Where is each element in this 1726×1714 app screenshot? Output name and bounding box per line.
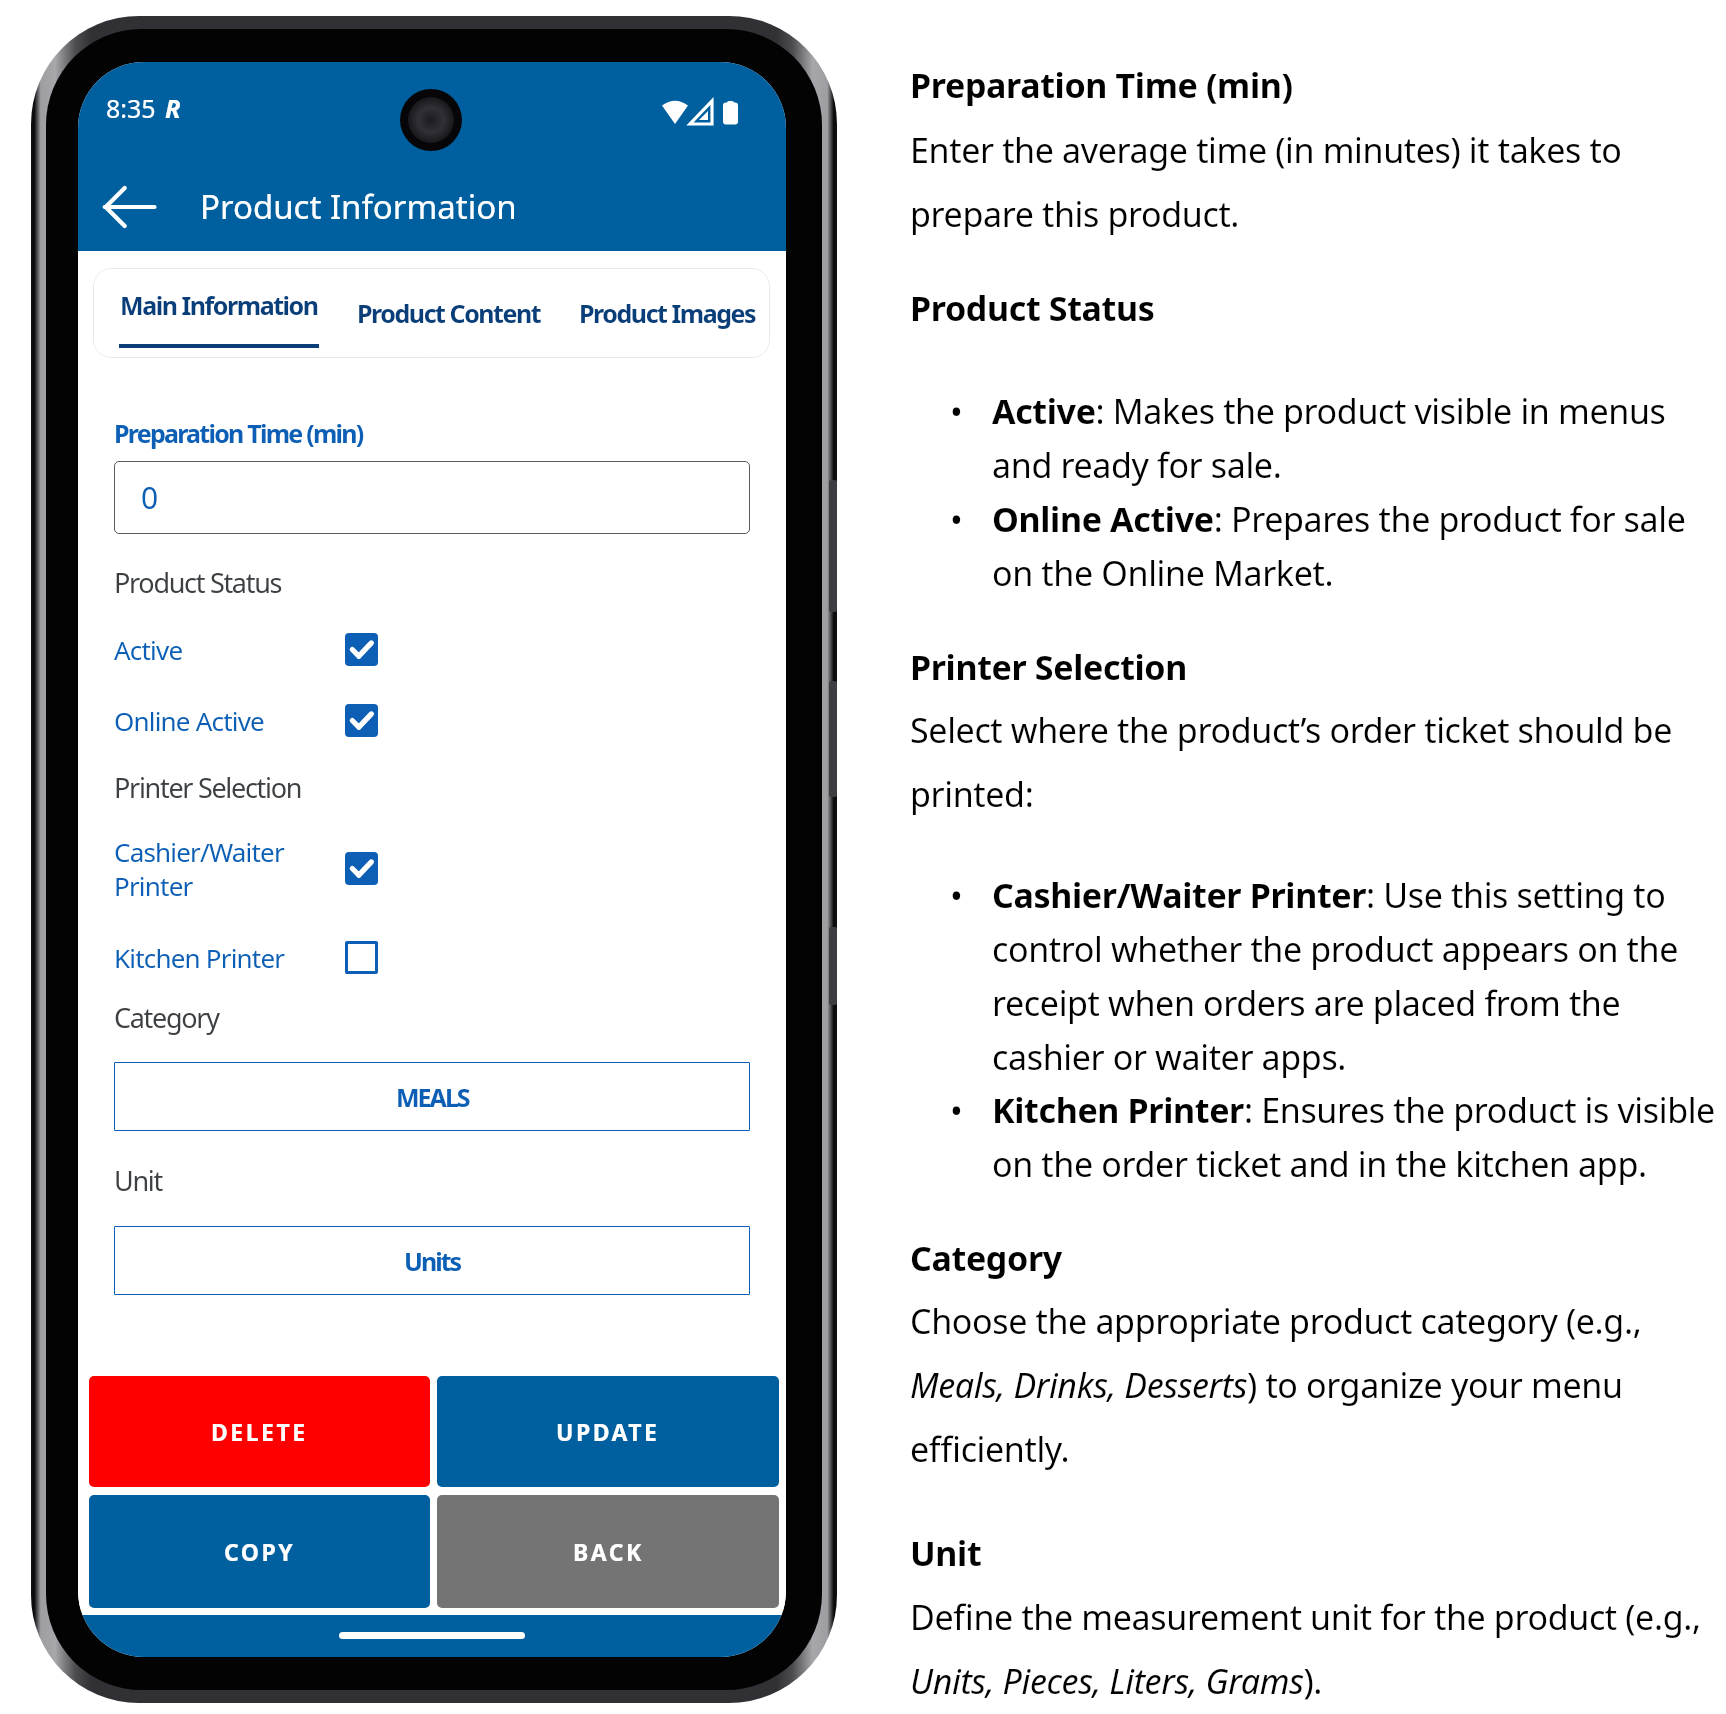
staticText: Category <box>910 1235 1716 1281</box>
staticText: • <box>950 1087 963 1133</box>
staticText: Online Active: Prepares the product for … <box>992 496 1716 596</box>
button[interactable]: UPDATE <box>437 1376 779 1487</box>
staticText: R <box>165 91 181 125</box>
staticText: Unit <box>114 1162 162 1199</box>
staticText: Product Status <box>114 564 282 601</box>
button[interactable]: COPY <box>89 1495 430 1608</box>
staticText: Kitchen Printer: Ensures the product is … <box>992 1087 1716 1187</box>
staticText: Main Information <box>120 288 318 322</box>
staticText: Printer Selection <box>114 769 302 806</box>
staticText: Active: Makes the product visible in men… <box>992 388 1716 488</box>
staticText: Choose the appropriate product category … <box>910 1298 1716 1472</box>
button[interactable]: Product Images <box>578 296 756 330</box>
staticText: Product Status <box>910 285 1716 331</box>
staticText: Cashier/Waiter Printer: Use this setting… <box>992 872 1716 1080</box>
staticText: BACK <box>573 1536 644 1567</box>
button[interactable]: Units <box>114 1226 750 1295</box>
staticText: Cashier/Waiter Printer <box>114 834 284 903</box>
staticText: DELETE <box>211 1416 308 1447</box>
staticText: Product Images <box>579 296 756 330</box>
staticText: COPY <box>224 1536 296 1567</box>
staticText: Category <box>114 999 219 1036</box>
staticText: Printer Selection <box>910 644 1716 690</box>
staticText: Active <box>114 632 183 667</box>
staticText: Online Active <box>114 703 264 738</box>
staticText: UPDATE <box>556 1416 660 1447</box>
staticText: Product Information <box>200 184 517 229</box>
staticText: Preparation Time (min) <box>114 416 363 450</box>
staticText: Unit <box>910 1530 1716 1576</box>
button[interactable]: MEALS <box>114 1062 750 1131</box>
button[interactable]: Active <box>114 632 378 667</box>
staticText: • <box>950 496 963 542</box>
staticText: Enter the average time (in minutes) it t… <box>910 127 1716 237</box>
button[interactable]: Product Content <box>357 296 541 330</box>
staticText: • <box>950 872 963 918</box>
staticText: Preparation Time (min) <box>910 62 1716 108</box>
staticText: Product Content <box>357 296 541 330</box>
button[interactable]: DELETE <box>89 1376 430 1487</box>
staticText: Define the measurement unit for the prod… <box>910 1594 1716 1704</box>
button[interactable]: Main Information <box>119 288 319 338</box>
staticText: Select where the product’s order ticket … <box>910 707 1716 817</box>
staticText: Kitchen Printer <box>114 940 285 975</box>
button[interactable]: BACK <box>437 1495 779 1608</box>
button[interactable]: Kitchen Printer <box>114 940 378 975</box>
button[interactable]: 0 <box>114 461 750 534</box>
staticText: • <box>950 388 963 434</box>
staticText: MEALS <box>396 1080 469 1114</box>
staticText: 0 <box>141 477 159 518</box>
button[interactable]: Cashier/Waiter Printer <box>114 834 378 903</box>
button[interactable]: Online Active <box>114 703 378 738</box>
staticText: Units <box>404 1244 461 1278</box>
staticText: 8:35 <box>106 91 156 125</box>
button[interactable]: Back <box>100 176 162 238</box>
